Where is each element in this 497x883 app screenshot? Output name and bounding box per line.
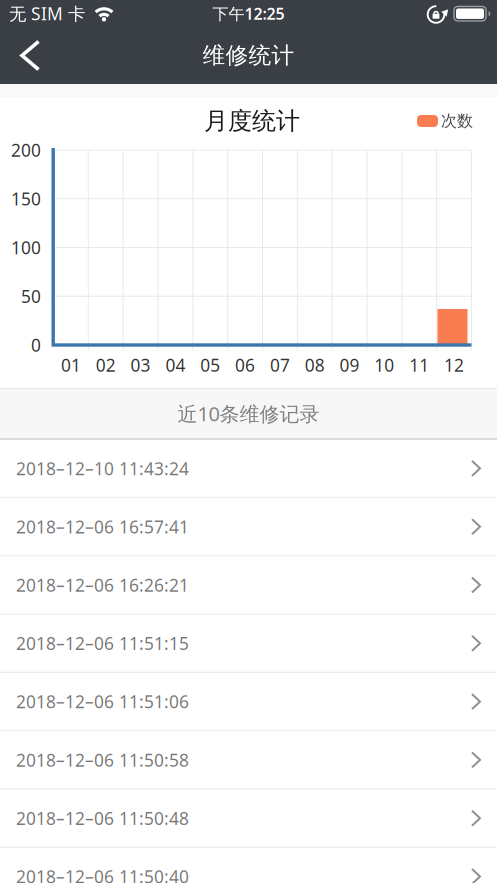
staticText: 04 xyxy=(165,353,185,376)
staticText: 10 xyxy=(374,353,394,376)
staticText: 无 SIM 卡 xyxy=(9,2,85,25)
button[interactable]: 2018–12–06 11:51:15 xyxy=(0,615,497,673)
staticText: 200 xyxy=(11,138,41,161)
staticText: 2018–12–06 11:50:40 xyxy=(16,865,189,883)
button[interactable]: 2018–12–10 11:43:24 xyxy=(0,440,497,498)
staticText: 100 xyxy=(11,236,41,259)
staticText: 03 xyxy=(131,353,151,376)
staticText: 150 xyxy=(11,187,41,210)
staticText: 09 xyxy=(339,353,359,376)
staticText: 50 xyxy=(21,285,41,308)
staticText: 下午12:25 xyxy=(212,3,284,24)
staticText: 维修统计 xyxy=(202,42,294,69)
staticText: 01 xyxy=(61,353,81,376)
button[interactable]: 2018–12–06 11:51:06 xyxy=(0,673,497,731)
button[interactable]: 2018–12–06 16:26:21 xyxy=(0,557,497,615)
staticText: 08 xyxy=(305,353,325,376)
staticText: 近10条维修记录 xyxy=(177,400,319,427)
staticText: 次数 xyxy=(441,111,473,131)
button[interactable]: 2018–12–06 11:50:40 xyxy=(0,848,497,883)
button[interactable]: Back xyxy=(0,34,56,76)
staticText: 2018–12–06 11:51:06 xyxy=(16,690,189,713)
staticText: 月度统计 xyxy=(204,106,300,136)
staticText: 0 xyxy=(31,333,41,356)
staticText: 2018–12–06 11:51:15 xyxy=(16,632,189,655)
staticText: 05 xyxy=(200,353,220,376)
button[interactable]: 2018–12–06 16:57:41 xyxy=(0,498,497,557)
staticText: 2018–12–06 16:57:41 xyxy=(16,515,189,538)
staticText: 12 xyxy=(444,353,464,376)
staticText: 06 xyxy=(235,353,255,376)
staticText: 2018–12–10 11:43:24 xyxy=(16,457,189,480)
staticText: 07 xyxy=(270,353,290,376)
button[interactable]: 2018–12–06 11:50:58 xyxy=(0,731,497,790)
staticText: 2018–12–06 11:50:48 xyxy=(16,807,189,830)
staticText: 02 xyxy=(96,353,116,376)
staticText: 2018–12–06 16:26:21 xyxy=(16,573,189,596)
staticText: 11 xyxy=(409,353,429,376)
staticText: 2018–12–06 11:50:58 xyxy=(16,748,189,771)
button[interactable]: 2018–12–06 11:50:48 xyxy=(0,790,497,848)
